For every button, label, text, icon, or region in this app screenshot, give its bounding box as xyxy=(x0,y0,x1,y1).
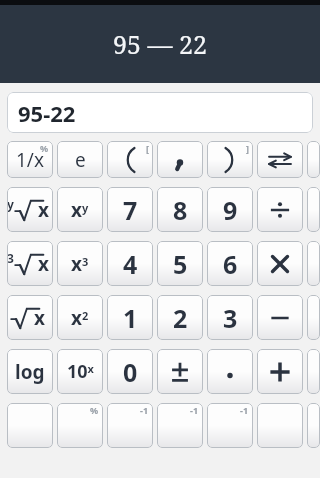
staticText: 6 xyxy=(223,247,238,281)
button[interactable]: Plus xyxy=(257,349,303,394)
staticText: xy xyxy=(71,197,89,223)
button[interactable]: x cubed xyxy=(57,241,103,286)
staticText: 2 xyxy=(173,301,188,335)
button[interactable]: 8 xyxy=(157,187,203,232)
staticText: 1 xyxy=(123,301,138,335)
button[interactable]: Minus xyxy=(257,295,303,340)
staticText: 9 xyxy=(223,193,238,227)
staticText: % xyxy=(90,404,99,416)
staticText: -1 xyxy=(240,404,249,416)
staticText: ] xyxy=(246,142,249,154)
staticText: 8 xyxy=(173,193,188,227)
staticText: e xyxy=(75,147,86,173)
button[interactable]: inverse xyxy=(157,403,203,448)
button[interactable]: Multiply xyxy=(257,241,303,286)
button[interactable]: inverse xyxy=(107,403,153,448)
button[interactable]: 7 xyxy=(107,187,153,232)
staticText: 3 xyxy=(223,301,238,335)
staticText: 3 xyxy=(7,250,14,266)
button[interactable]: more xyxy=(307,241,320,286)
staticText: 5 xyxy=(173,247,188,281)
staticText: y xyxy=(7,196,14,212)
button[interactable]: one over x xyxy=(7,141,53,178)
button[interactable]: decimal point xyxy=(207,349,253,394)
button[interactable]: more xyxy=(307,295,320,340)
button[interactable]: comma xyxy=(157,141,203,178)
staticText: -1 xyxy=(140,404,149,416)
button[interactable]: cube root of x xyxy=(7,241,53,286)
button[interactable]: ten to the x xyxy=(57,349,103,394)
staticText: x2 xyxy=(71,305,89,331)
button[interactable]: 5 xyxy=(157,241,203,286)
button[interactable]: 3 xyxy=(207,295,253,340)
staticText: x xyxy=(34,305,45,331)
staticText: 7 xyxy=(123,193,138,227)
button[interactable]: x to the y xyxy=(57,187,103,232)
button[interactable]: close parenthesis xyxy=(207,141,253,178)
staticText: [ xyxy=(146,142,149,154)
staticText: -1 xyxy=(190,404,199,416)
button[interactable]: 4 xyxy=(107,241,153,286)
button[interactable]: e xyxy=(57,141,103,178)
button[interactable]: e to the x xyxy=(7,403,53,448)
staticText: 4 xyxy=(123,247,138,281)
button[interactable]: Divide xyxy=(257,187,303,232)
staticText: 1/x xyxy=(16,147,44,173)
staticText: x3 xyxy=(71,251,89,277)
button[interactable]: 6 xyxy=(207,241,253,286)
button[interactable]: square root of x xyxy=(7,295,53,340)
staticText: 10x xyxy=(67,359,94,384)
button[interactable]: more xyxy=(307,141,320,178)
button[interactable]: more xyxy=(307,403,320,448)
button[interactable]: logarithm xyxy=(7,349,53,394)
button[interactable]: more xyxy=(307,187,320,232)
staticText: % xyxy=(40,142,49,154)
button[interactable]: 0 xyxy=(107,349,153,394)
button[interactable]: x squared xyxy=(57,295,103,340)
button[interactable]: 9 xyxy=(207,187,253,232)
staticText: 0 xyxy=(123,355,138,389)
button[interactable]: y-th root of x xyxy=(7,187,53,232)
button[interactable]: 1 xyxy=(107,295,153,340)
button[interactable]: Swap xyxy=(257,141,303,178)
button[interactable]: percent function xyxy=(57,403,103,448)
staticText: 95 — 22 xyxy=(113,27,207,61)
button[interactable]: inverse xyxy=(207,403,253,448)
button[interactable]: open parenthesis xyxy=(107,141,153,178)
staticText: x xyxy=(38,197,47,223)
button[interactable]: 2 xyxy=(157,295,203,340)
button[interactable]: plus or minus xyxy=(157,349,203,394)
button[interactable]: more xyxy=(257,403,303,448)
staticText: log xyxy=(15,359,45,385)
staticText: x xyxy=(38,251,47,277)
button[interactable]: more xyxy=(307,349,320,394)
button[interactable]: 95-22 xyxy=(7,92,313,133)
staticText: 95-22 xyxy=(18,98,76,128)
